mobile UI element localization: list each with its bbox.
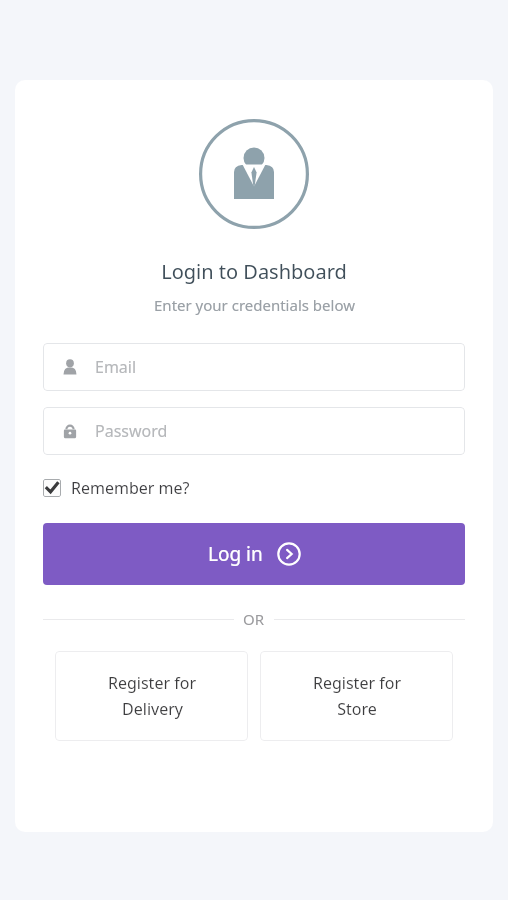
- staticText: Register for: [313, 672, 401, 694]
- staticText: Delivery: [122, 698, 183, 720]
- button[interactable]: Register for: [55, 651, 248, 741]
- button[interactable]: Password: [43, 407, 465, 455]
- staticText: OR: [243, 609, 265, 629]
- button[interactable]: Email: [43, 343, 465, 391]
- staticText: Log in: [208, 541, 263, 567]
- staticText: Login to Dashboard: [161, 258, 347, 285]
- staticText: Enter your credentials below: [154, 295, 355, 315]
- staticText: Password: [95, 420, 168, 442]
- staticText: Email: [95, 356, 137, 378]
- button[interactable]: Log in: [43, 523, 465, 585]
- staticText: Register for: [108, 672, 196, 694]
- staticText: Remember me?: [71, 477, 190, 499]
- button[interactable]: Remember me?: [43, 477, 465, 499]
- staticText: Store: [337, 698, 377, 720]
- button[interactable]: Register for: [260, 651, 453, 741]
